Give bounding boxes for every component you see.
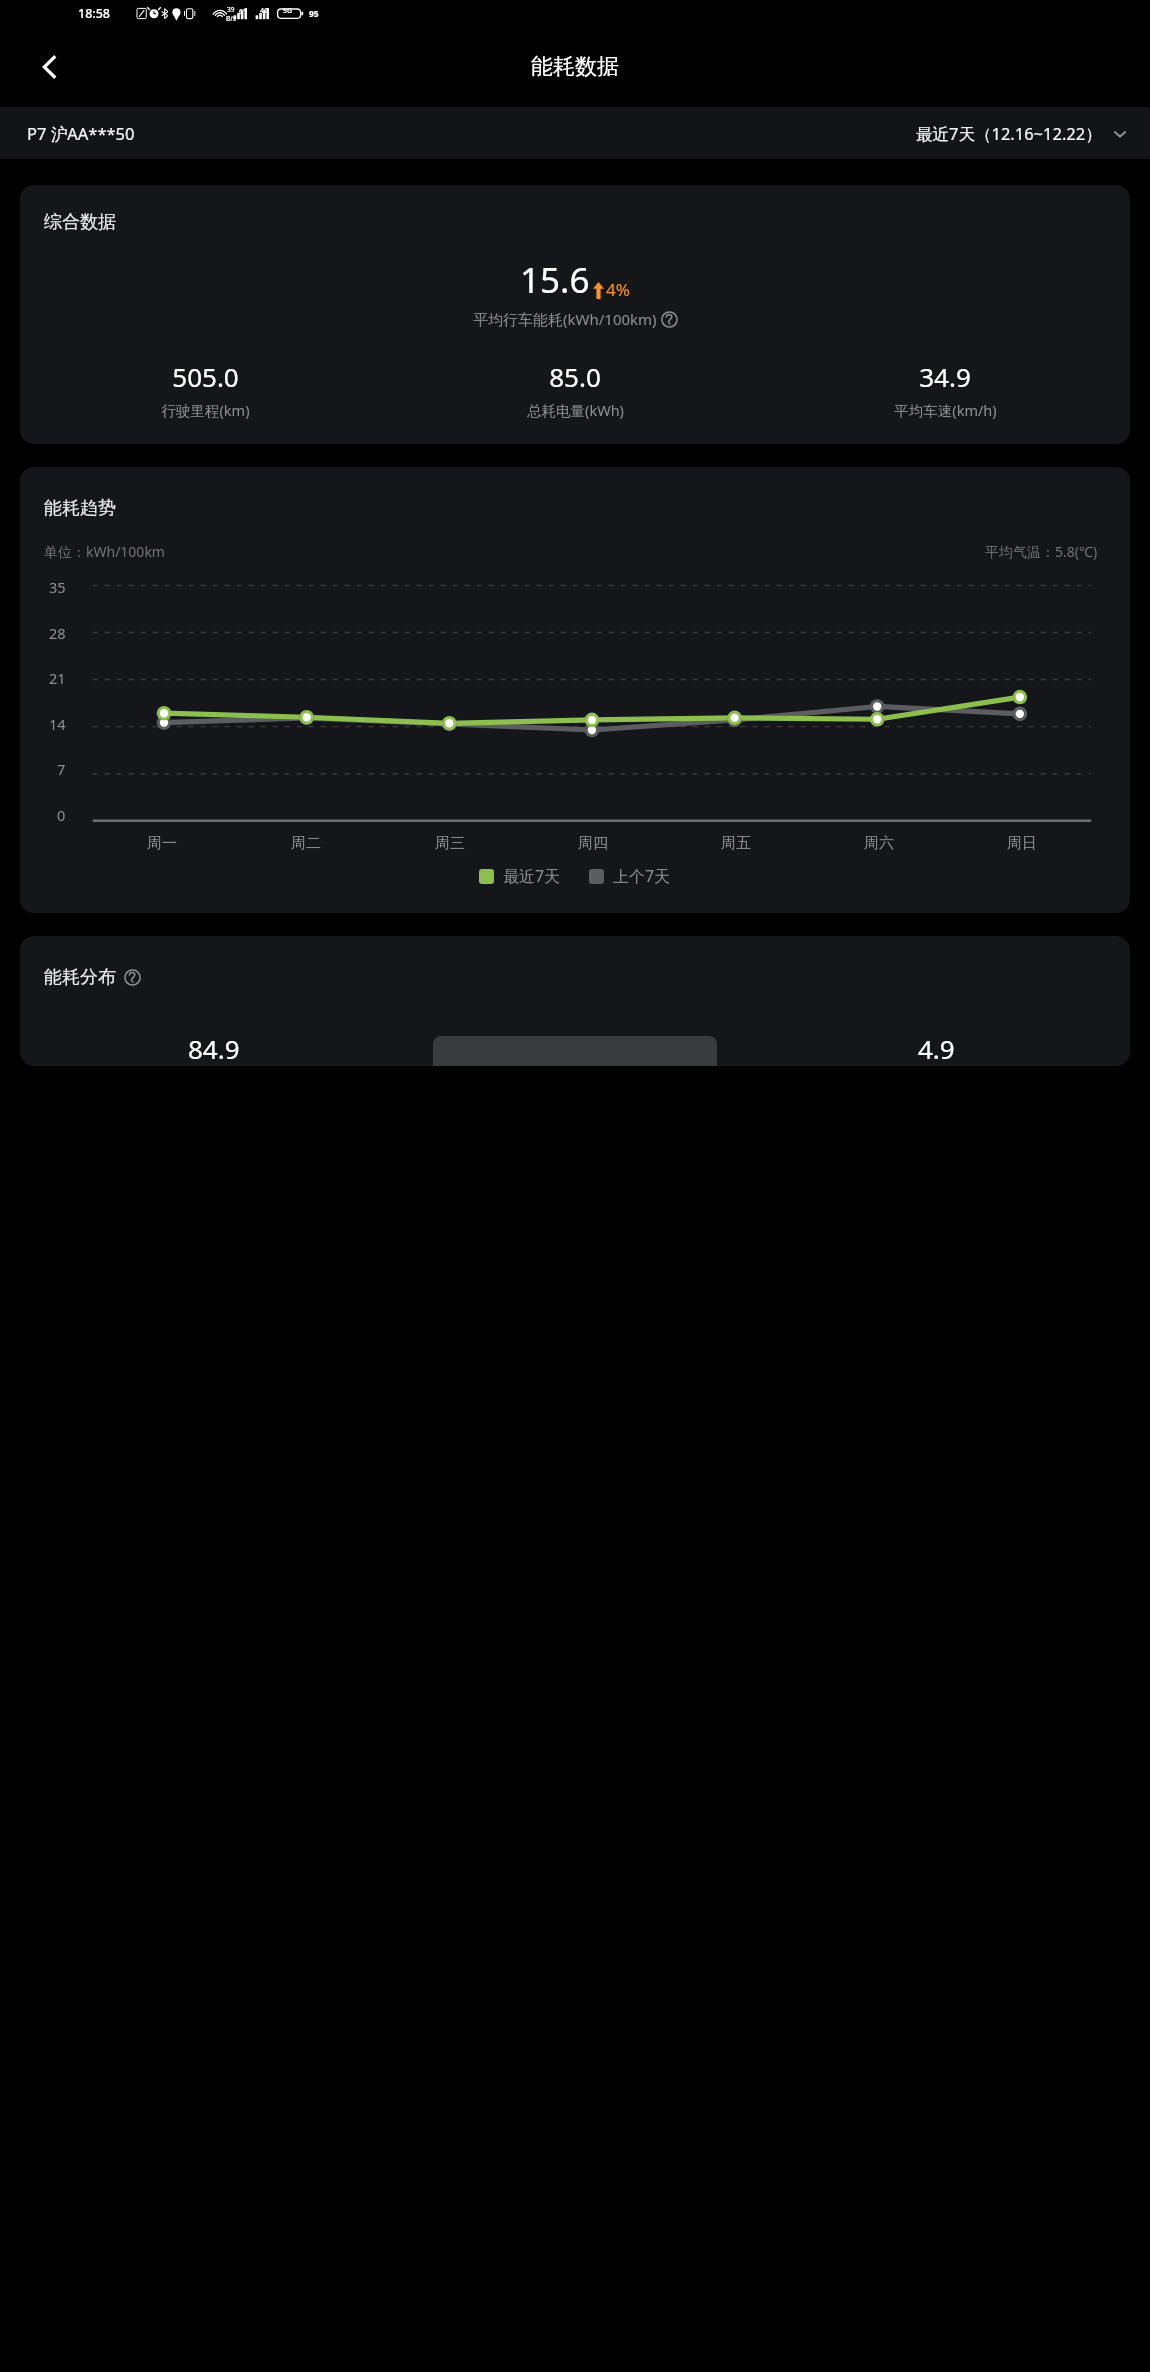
staticText: 4% [606,278,630,301]
button[interactable]: 34.9 [760,359,1130,420]
button[interactable]: 505.0 [20,359,390,420]
staticText: 95 [309,8,319,20]
staticText: 总耗电量(kWh) [527,400,624,420]
button[interactable]: 上个7天 [589,865,671,887]
staticText: 4.9 [918,1031,955,1066]
button[interactable]: 能耗分布 [20,936,1130,1066]
staticText: 周五 [721,834,751,853]
staticText: 最近7天（12.16~12.22） [916,122,1102,145]
button[interactable]: P7 沪AA***50 [27,122,135,145]
staticText: 28 [49,623,66,643]
button[interactable]: 综合数据 [20,185,1130,444]
staticText: 综合数据 [44,211,116,234]
staticText: 平均车速(km/h) [894,400,997,420]
staticText: 84.9 [188,1031,240,1066]
button[interactable]: 85.0 [390,359,760,420]
staticText: 周三 [435,834,465,853]
button[interactable]: 能耗趋势 [20,467,1130,913]
staticText: 7 [57,759,66,779]
staticText: 单位：kWh/100km [44,542,165,561]
button[interactable]: 说明 [661,311,678,328]
button[interactable]: 最近7天（12.16~12.22） [916,122,1128,145]
staticText: 15.6 [520,256,590,304]
staticText: 平均行车能耗(kWh/100km) [473,309,657,329]
staticText: 周四 [578,834,608,853]
staticText: 最近7天 [503,865,561,887]
staticText: 周二 [291,834,321,853]
staticText: 能耗分布 [44,966,116,989]
staticText: 35 [49,577,66,597]
staticText: 5G [283,6,293,16]
staticText: 周日 [1007,834,1037,853]
staticText: 21 [49,668,66,688]
staticText: 4G [260,6,270,16]
staticText: 周一 [147,834,177,853]
staticText: 34.9 [919,359,971,394]
staticText: 18:58 [78,5,111,22]
staticText: B/s [226,14,236,23]
staticText: 85.0 [549,359,601,394]
staticText: 能耗数据 [531,53,619,81]
button[interactable]: 说明 [124,969,141,986]
staticText: 平均气温：5.8(℃) [985,542,1098,561]
button[interactable]: 最近7天 [479,865,561,887]
staticText: 能耗趋势 [44,497,116,520]
staticText: 周六 [864,834,894,853]
staticText: 行驶里程(km) [161,400,250,420]
button[interactable]: Back [22,39,78,95]
staticText: 14 [49,714,66,734]
staticText: 39 [227,5,235,14]
staticText: 6⁺ [239,7,245,16]
staticText: 505.0 [172,359,239,394]
staticText: 上个7天 [613,865,671,887]
staticText: 0 [57,805,66,825]
